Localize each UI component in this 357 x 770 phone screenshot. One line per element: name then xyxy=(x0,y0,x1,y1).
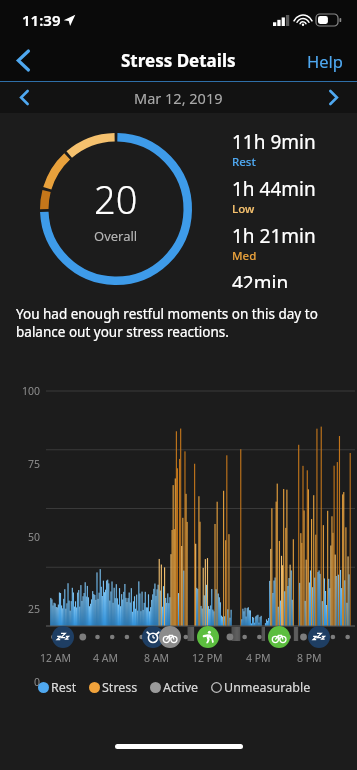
button[interactable]: Stress xyxy=(89,679,138,696)
button[interactable]: sleep xyxy=(52,626,74,648)
staticText: Rest xyxy=(51,679,77,696)
staticText: 11h 9min xyxy=(232,129,316,155)
button[interactable]: Rest xyxy=(38,679,77,696)
staticText: Active xyxy=(163,679,199,696)
staticText: Unmeasurable xyxy=(224,679,311,696)
staticText: 11:39 xyxy=(22,10,61,30)
button[interactable]: sleep xyxy=(308,626,330,648)
staticText: 75 xyxy=(14,457,40,471)
staticText: 4 AM xyxy=(93,651,118,665)
staticText: Help xyxy=(307,50,343,72)
staticText: 1h 21min xyxy=(232,223,316,249)
staticText: 12 AM xyxy=(40,651,71,665)
staticText: Low xyxy=(232,201,255,217)
staticText: 8 AM xyxy=(144,651,169,665)
button[interactable]: Previous day xyxy=(0,82,48,113)
button[interactable]: alarm xyxy=(142,626,164,648)
button[interactable]: Back xyxy=(0,40,46,81)
staticText: Med xyxy=(232,248,257,264)
button[interactable]: Help xyxy=(307,50,343,72)
staticText: 42min xyxy=(232,270,289,288)
button[interactable]: Next day xyxy=(309,82,357,113)
button[interactable]: bike xyxy=(268,626,290,648)
staticText: Mar 12, 2019 xyxy=(134,88,223,108)
staticText: 50 xyxy=(14,530,40,544)
button[interactable]: run xyxy=(197,626,219,648)
staticText: 8 PM xyxy=(297,651,322,665)
button[interactable]: Active xyxy=(150,679,199,696)
staticText: Rest xyxy=(232,154,256,170)
staticText: 4 PM xyxy=(246,651,271,665)
button[interactable]: Unmeasurable xyxy=(211,679,311,696)
staticText: Overall xyxy=(94,227,138,245)
staticText: Stress xyxy=(102,679,138,696)
staticText: 1h 44min xyxy=(232,176,316,202)
staticText: 20 xyxy=(94,173,138,225)
staticText: 100 xyxy=(14,384,40,398)
button[interactable]: bike xyxy=(159,626,181,648)
staticText: 12 PM xyxy=(192,651,223,665)
staticText: 25 xyxy=(14,602,40,616)
staticText: Stress Details xyxy=(121,49,236,72)
staticText: 0 xyxy=(14,675,40,689)
staticText: You had enough restful moments on this d… xyxy=(16,305,341,341)
